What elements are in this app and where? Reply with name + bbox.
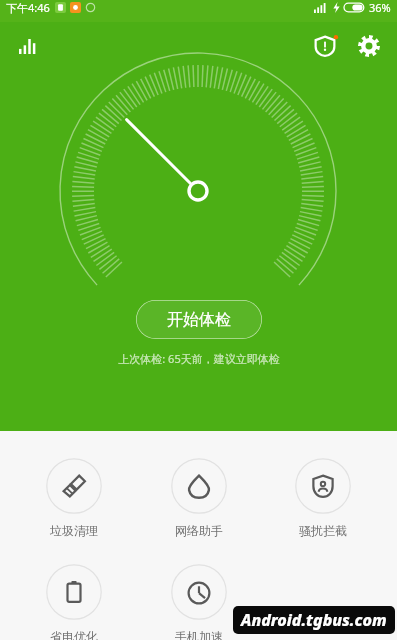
- button[interactable]: 省电优化: [24, 564, 124, 640]
- staticText: 手机加速: [175, 629, 223, 640]
- button[interactable]: Statistics: [8, 26, 48, 66]
- button[interactable]: 网络助手: [149, 458, 249, 538]
- button[interactable]: 垃圾清理: [24, 458, 124, 538]
- staticText: 36%: [369, 0, 391, 15]
- staticText: 下午4:46: [6, 0, 50, 15]
- button[interactable]: 骚扰拦截: [273, 458, 373, 538]
- staticText: Android.tgbus.com: [241, 609, 387, 631]
- button[interactable]: Security alerts: [303, 24, 347, 68]
- staticText: 骚扰拦截: [299, 523, 347, 538]
- staticText: 上次体检: 65天前，建议立即体检: [118, 351, 280, 366]
- button[interactable]: 开始体检: [136, 300, 262, 339]
- button[interactable]: 手机加速: [149, 564, 249, 640]
- staticText: 省电优化: [50, 629, 98, 640]
- staticText: 垃圾清理: [50, 523, 98, 538]
- button[interactable]: Settings: [347, 24, 391, 68]
- staticText: 网络助手: [175, 523, 223, 538]
- staticText: 开始体检: [167, 310, 231, 330]
